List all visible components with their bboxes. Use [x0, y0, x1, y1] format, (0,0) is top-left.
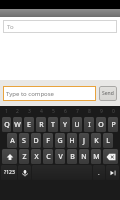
button[interactable]: Z	[19, 149, 29, 164]
staticText: W	[14, 120, 21, 130]
staticText: T	[51, 120, 55, 130]
button[interactable]: J	[79, 133, 89, 148]
button[interactable]: N	[79, 149, 89, 164]
staticText: 7	[76, 108, 79, 115]
staticText: H	[69, 136, 75, 146]
button[interactable]: ?123	[1, 165, 17, 180]
staticText: Q	[4, 120, 10, 130]
staticText: E	[27, 120, 31, 130]
button[interactable]: I	[84, 117, 94, 132]
staticText: I	[88, 120, 91, 130]
button[interactable]: S	[19, 133, 29, 148]
staticText: G	[57, 136, 63, 146]
button[interactable]: Type to compose	[3, 86, 96, 101]
button[interactable]: D	[31, 133, 41, 148]
staticText: B	[70, 152, 75, 162]
staticText: S	[22, 136, 26, 146]
staticText: D	[33, 136, 39, 146]
button[interactable]: O	[96, 117, 106, 132]
button[interactable]: X	[31, 149, 41, 164]
staticText: 6	[64, 108, 67, 115]
staticText: U	[74, 120, 80, 130]
staticText: Type to compose	[6, 90, 54, 98]
staticText: M	[93, 152, 100, 162]
button[interactable]: Next	[106, 165, 119, 180]
button[interactable]: V	[55, 149, 65, 164]
button[interactable]: .	[93, 165, 105, 180]
staticText: 9	[100, 108, 103, 115]
button[interactable]: P	[108, 117, 118, 132]
staticText: V	[58, 152, 63, 162]
staticText: Send	[102, 90, 114, 97]
staticText: 8	[88, 108, 91, 115]
button[interactable]: Y	[60, 117, 70, 132]
staticText: J	[83, 136, 85, 146]
button[interactable]: L	[103, 133, 113, 148]
staticText: R	[39, 120, 44, 130]
staticText: 5	[52, 108, 55, 115]
staticText: L	[106, 136, 110, 146]
button[interactable]: A	[7, 133, 17, 148]
button[interactable]: B	[67, 149, 77, 164]
button[interactable]: E	[24, 117, 34, 132]
staticText: ?123	[4, 169, 15, 176]
button[interactable]: Voice input	[18, 165, 31, 180]
staticText: To	[7, 23, 14, 31]
button[interactable]: Shift	[2, 149, 17, 164]
button[interactable]: G	[55, 133, 65, 148]
button[interactable]: M	[91, 149, 101, 164]
staticText: 1	[5, 108, 8, 115]
button[interactable]: U	[72, 117, 82, 132]
staticText: O	[98, 120, 104, 130]
button[interactable]: W	[13, 117, 22, 132]
staticText: Y	[63, 120, 67, 130]
staticText: N	[81, 152, 87, 162]
button[interactable]: Backspace	[103, 149, 118, 164]
button[interactable]: R	[36, 117, 46, 132]
button[interactable]: H	[67, 133, 77, 148]
staticText: P	[111, 120, 116, 130]
button[interactable]: C	[43, 149, 53, 164]
staticText: 0	[112, 108, 115, 115]
button[interactable]: To	[3, 20, 117, 33]
staticText: 3	[28, 108, 31, 115]
button[interactable]: T	[48, 117, 58, 132]
staticText: C	[46, 152, 51, 162]
button[interactable]: K	[91, 133, 101, 148]
staticText: 2	[16, 108, 19, 115]
staticText: .	[98, 169, 100, 177]
button[interactable]: Send	[99, 86, 117, 101]
staticText: X	[34, 152, 39, 162]
button[interactable]: Q	[2, 117, 11, 132]
staticText: A	[10, 136, 15, 146]
staticText: Z	[22, 152, 27, 162]
button[interactable]: F	[43, 133, 53, 148]
staticText: F	[46, 136, 50, 146]
staticText: 4	[40, 108, 43, 115]
staticText: K	[94, 136, 99, 146]
